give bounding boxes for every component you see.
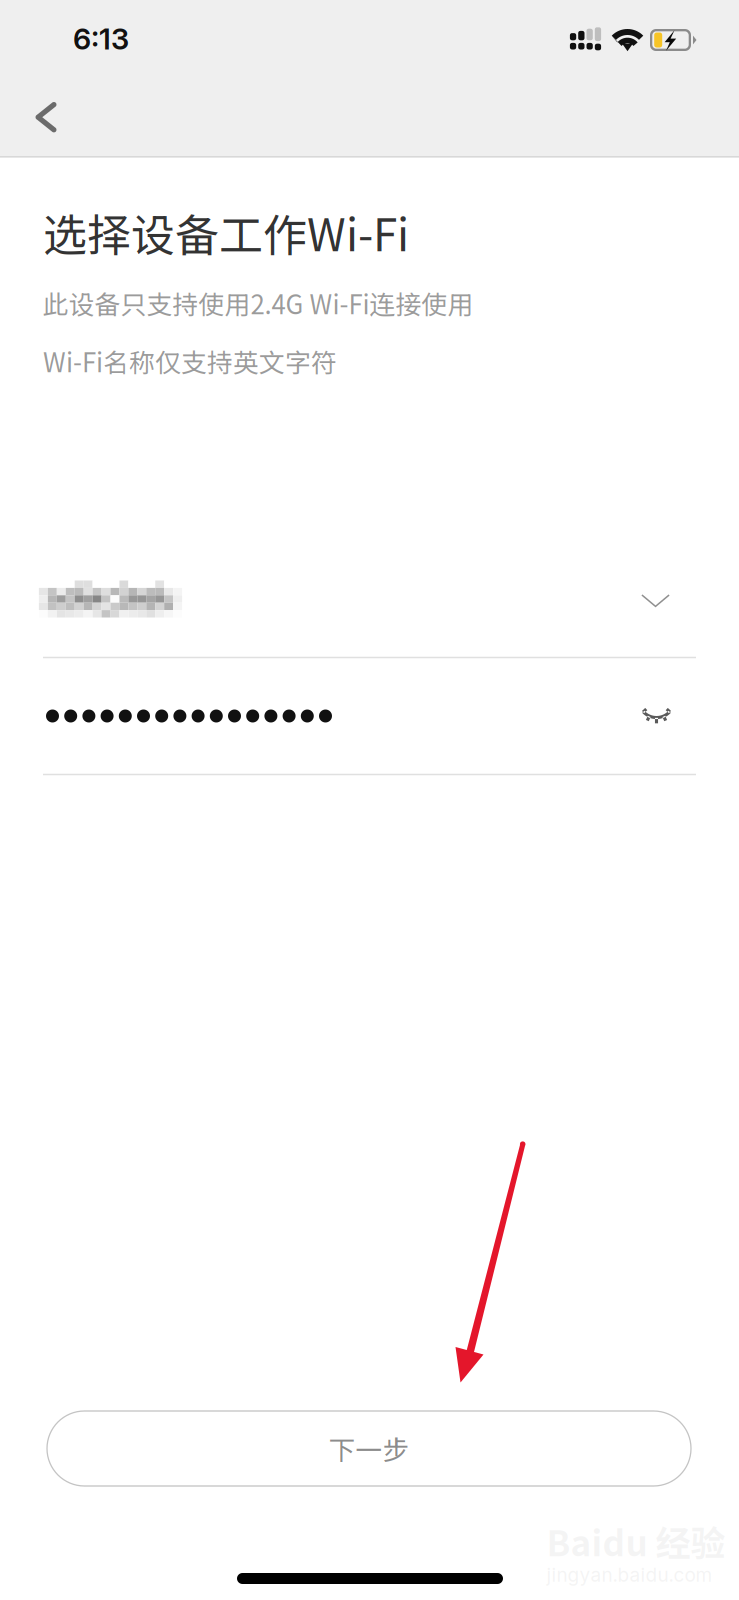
button[interactable]: Back [22,82,99,152]
staticText: 此设备只支持使用2.4G Wi-Fi连接使用 [42,284,473,322]
button[interactable]: 下一步 [47,1411,691,1486]
staticText: jingyan.baidu.com [546,1563,712,1586]
staticText: Wi-Fi名称仅支持英文字符 [43,342,337,380]
button[interactable]: Show password [642,709,739,722]
staticText: 下一步 [328,1429,409,1468]
staticText: 6:13 [73,21,129,57]
button[interactable]: Wi-Fi network [0,559,739,656]
staticText: 选择设备工作Wi-Fi [43,200,409,264]
staticText: Baidu 经验 [546,1516,725,1566]
